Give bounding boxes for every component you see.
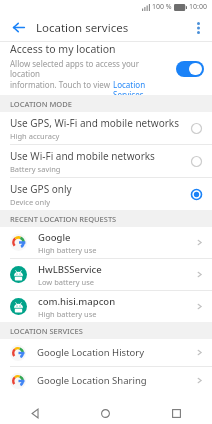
button[interactable]: Recents (141, 402, 212, 424)
button[interactable]: Home (70, 402, 141, 424)
staticText: 100 % (152, 2, 172, 12)
staticText: 10:00 (189, 2, 207, 12)
button[interactable]: Access to my location (0, 42, 212, 95)
button[interactable]: Use GPS, Wi-Fi and mobile networks (0, 112, 212, 144)
staticText: Battery saving (10, 164, 61, 174)
staticText: Google (38, 231, 71, 244)
button[interactable]: Use GPS only (0, 178, 212, 210)
staticText: Google Location History (37, 346, 195, 359)
button[interactable]: Access to my location toggle (176, 61, 204, 77)
button[interactable]: Google (0, 227, 212, 258)
staticText: LOCATION SERVICES (10, 326, 83, 336)
staticText: com.hisi.mapcon (38, 295, 116, 308)
staticText: Access to my location (10, 42, 116, 56)
staticText: Low battery use (38, 277, 94, 287)
staticText: Use GPS only (10, 182, 72, 196)
staticText: Device only (10, 197, 51, 207)
staticText: LOCATION MODE (10, 99, 72, 109)
staticText: Location services (36, 20, 129, 36)
staticText: High battery use (38, 309, 97, 319)
button[interactable]: Back (0, 402, 70, 424)
button[interactable]: Use Wi-Fi and mobile networks (0, 145, 212, 177)
staticText: Location Services (113, 79, 170, 95)
staticText: HwLBSService (38, 263, 102, 276)
button[interactable]: More options (184, 14, 212, 41)
staticText: RECENT LOCATION REQUESTS (10, 214, 117, 224)
staticText: Allow selected apps to access your locat… (10, 58, 170, 79)
button[interactable]: Google Location Sharing (0, 367, 212, 394)
button[interactable]: HwLBSService (0, 259, 212, 290)
staticText: Use Wi-Fi and mobile networks (10, 149, 155, 163)
staticText: High battery use (38, 245, 97, 255)
button[interactable]: Google Location History (0, 339, 212, 366)
staticText: Google Location Sharing (37, 374, 195, 387)
button[interactable]: com.hisi.mapcon (0, 291, 212, 322)
staticText: information. Touch to view (10, 79, 113, 90)
staticText: Use GPS, Wi-Fi and mobile networks (10, 116, 179, 130)
staticText: High accuracy (10, 131, 60, 141)
button[interactable]: Back (0, 14, 36, 41)
